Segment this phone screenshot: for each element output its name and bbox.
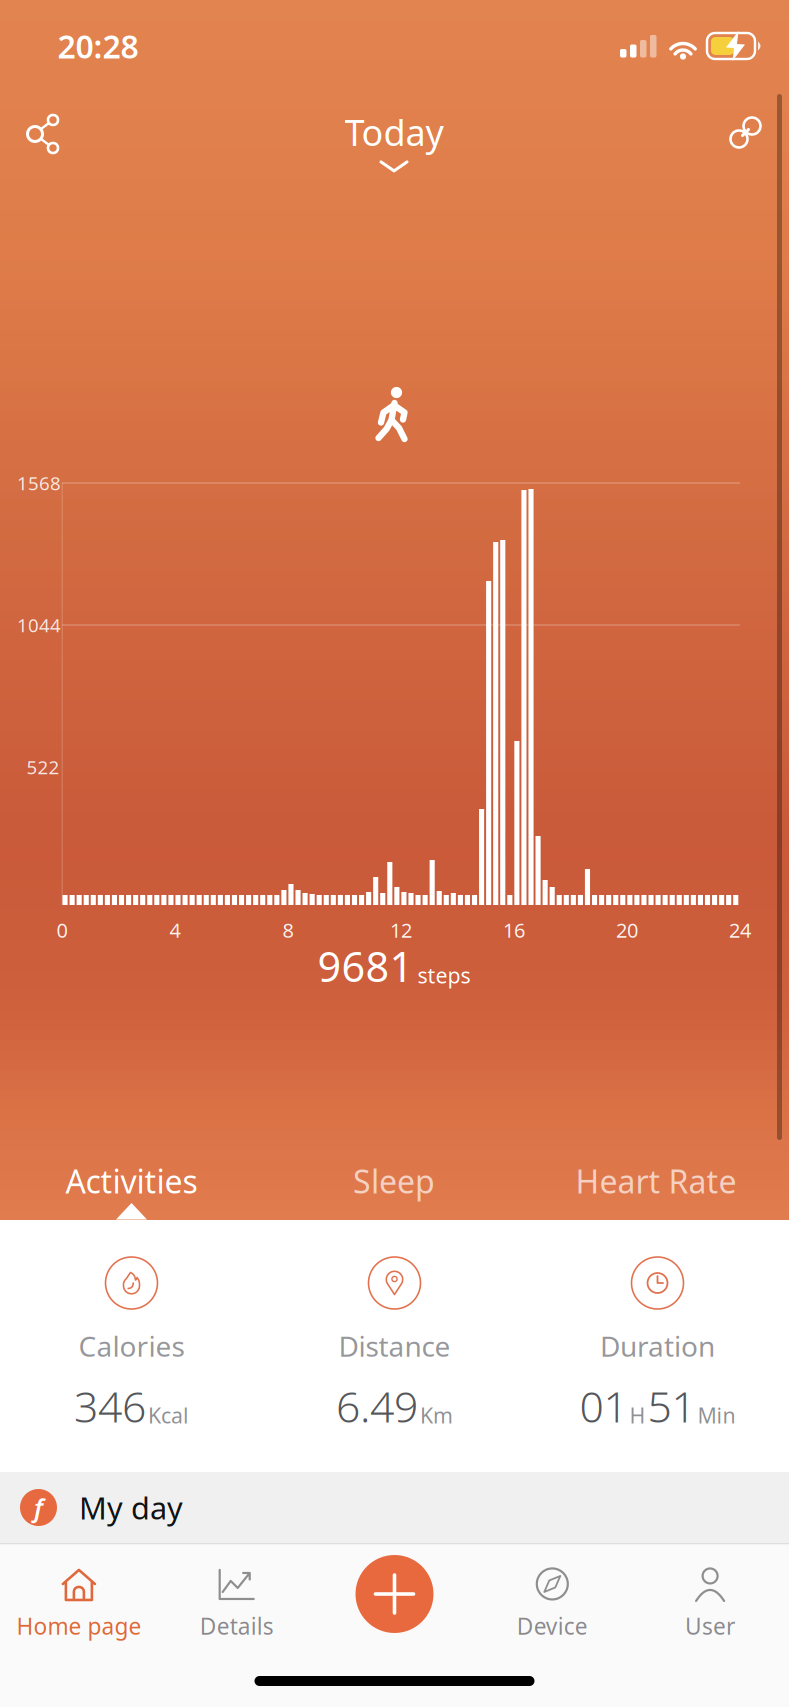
staticText: steps [417, 961, 470, 989]
button[interactable]: f [0, 1472, 789, 1542]
staticText: My day [79, 1487, 183, 1528]
staticText: H [629, 1401, 645, 1429]
staticText: 346 [74, 1378, 146, 1434]
staticText: User [685, 1611, 735, 1641]
button[interactable]: User [632, 1564, 788, 1644]
staticText: 01 [579, 1378, 627, 1434]
staticText: Distance [338, 1327, 450, 1365]
staticText: Today [344, 108, 443, 156]
staticText: Kcal [148, 1401, 189, 1429]
staticText: 12 [390, 917, 412, 943]
staticText: f [34, 1491, 43, 1524]
button[interactable]: Device [474, 1564, 630, 1644]
staticText: 16 [503, 917, 525, 943]
staticText: Heart Rate [575, 1160, 736, 1202]
button[interactable]: Today [344, 108, 443, 172]
staticText: Home page [16, 1611, 141, 1641]
button[interactable]: Link [714, 104, 774, 164]
staticText: 6.49 [336, 1378, 418, 1434]
button[interactable]: Activities [11, 1146, 251, 1216]
staticText: 51 [647, 1378, 695, 1434]
staticText: 4 [169, 917, 180, 943]
button[interactable]: Details [159, 1564, 315, 1644]
staticText: 20 [616, 917, 638, 943]
staticText: Km [420, 1401, 453, 1429]
staticText: Activities [65, 1160, 197, 1202]
staticText: Sleep [353, 1160, 435, 1202]
button[interactable]: Home page [1, 1564, 157, 1644]
staticText: Min [697, 1401, 735, 1429]
button[interactable]: Heart Rate [536, 1146, 776, 1216]
staticText: Duration [600, 1327, 715, 1365]
staticText: Device [517, 1611, 588, 1641]
staticText: 9681 [317, 939, 413, 993]
staticText: Calories [78, 1327, 184, 1365]
button[interactable]: Add [355, 1555, 433, 1633]
staticText: 1044 [17, 613, 61, 637]
staticText: 522 [26, 755, 59, 779]
button[interactable]: Share [13, 104, 73, 164]
staticText: 1568 [17, 471, 61, 495]
staticText: Details [200, 1611, 274, 1641]
staticText: 20:28 [57, 25, 138, 67]
staticText: 24 [729, 917, 751, 943]
staticText: 8 [282, 917, 293, 943]
staticText: 0 [56, 917, 67, 943]
button[interactable]: Sleep [274, 1146, 514, 1216]
